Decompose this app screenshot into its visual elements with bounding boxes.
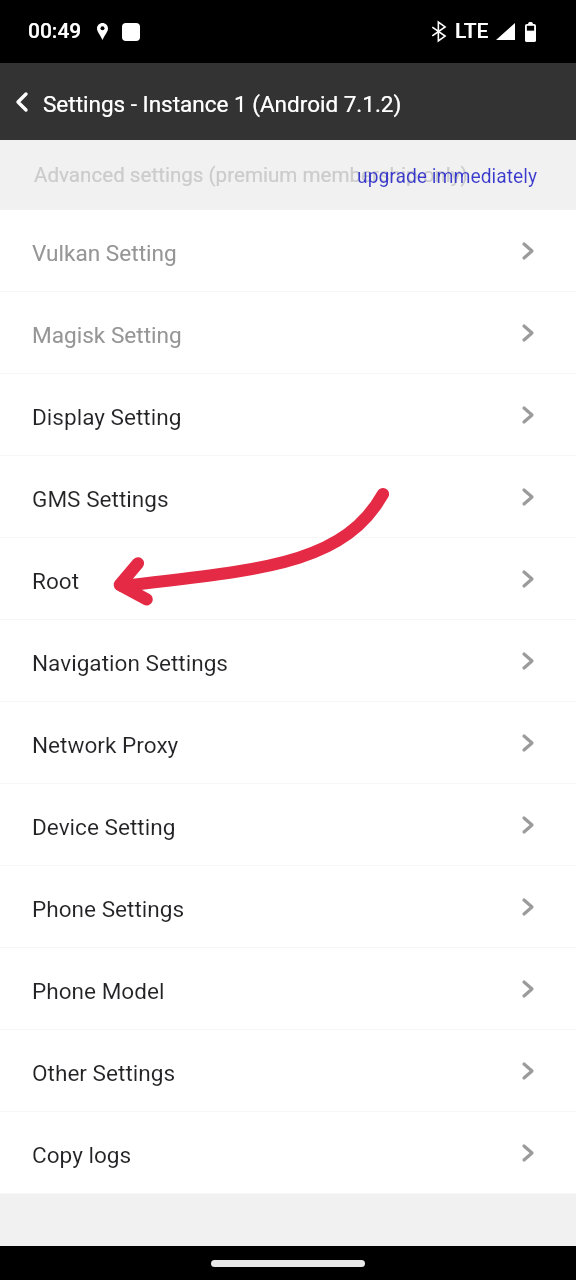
staticText: Vulkan Setting (32, 240, 177, 266)
button[interactable]: Other Settings (0, 1030, 576, 1111)
staticText: Root (32, 568, 80, 594)
staticText: Display Setting (32, 404, 182, 430)
button[interactable]: Phone Settings (0, 866, 576, 947)
button[interactable]: Navigation Settings (0, 620, 576, 701)
button[interactable]: Display Setting (0, 374, 576, 455)
button[interactable]: Device Setting (0, 784, 576, 865)
staticText: Phone Settings (32, 896, 185, 922)
staticText: Other Settings (32, 1060, 176, 1086)
button[interactable]: Network Proxy (0, 702, 576, 783)
button[interactable]: GMS Settings (0, 456, 576, 537)
button[interactable]: Phone Model (0, 948, 576, 1029)
staticText: Phone Model (32, 978, 165, 1004)
staticText: Advanced settings (premium membership on… (34, 163, 468, 187)
staticText: 00:49 (28, 19, 82, 44)
staticText: Magisk Setting (32, 322, 182, 348)
button[interactable]: Vulkan Setting (0, 210, 576, 291)
button[interactable]: Root (0, 538, 576, 619)
staticText: GMS Settings (32, 486, 169, 512)
button[interactable]: Advanced settings (premium membership on… (0, 140, 576, 210)
staticText: Copy logs (32, 1142, 132, 1168)
button[interactable]: Back (0, 63, 43, 140)
staticText: Device Setting (32, 814, 176, 840)
staticText: LTE (455, 19, 489, 44)
staticText: Network Proxy (32, 732, 179, 758)
button[interactable]: Copy logs (0, 1112, 576, 1193)
button[interactable]: Magisk Setting (0, 292, 576, 373)
staticText: Navigation Settings (32, 650, 229, 676)
staticText: Settings - Instance 1 (Android 7.1.2) (43, 91, 402, 117)
staticText: upgrade immediately (357, 165, 538, 188)
